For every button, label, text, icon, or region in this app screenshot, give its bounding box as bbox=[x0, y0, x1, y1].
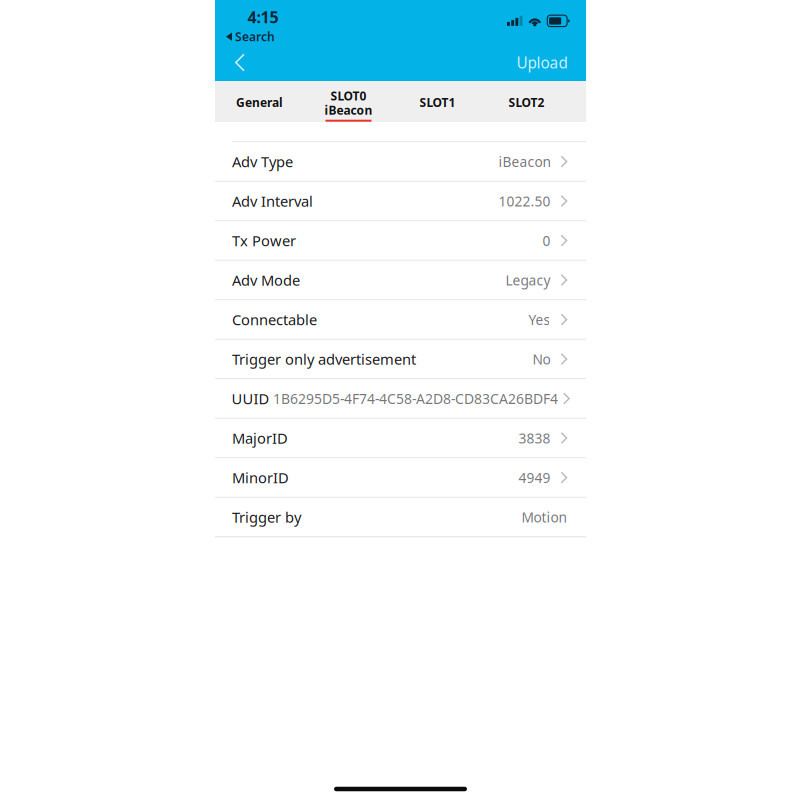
staticText: MinorID bbox=[232, 468, 289, 488]
button[interactable]: Back bbox=[215, 44, 259, 81]
button[interactable]: Adv Mode bbox=[215, 261, 586, 300]
staticText: Motion bbox=[521, 508, 566, 526]
button[interactable]: UUID bbox=[215, 379, 586, 419]
staticText: 1B6295D5-4F74-4C58-A2D8-CD83CA26BDF4 bbox=[273, 389, 558, 408]
staticText: 4949 bbox=[518, 468, 550, 487]
staticText: 3838 bbox=[518, 429, 550, 447]
staticText: Upload bbox=[516, 52, 567, 73]
button[interactable]: SLOT0 bbox=[304, 81, 393, 122]
staticText: Adv Interval bbox=[232, 191, 313, 211]
staticText: 4:15 bbox=[247, 6, 278, 28]
staticText: Adv Mode bbox=[232, 270, 300, 290]
staticText: Trigger only advertisement bbox=[232, 349, 416, 369]
staticText: Search bbox=[235, 28, 275, 45]
staticText: Connectable bbox=[232, 310, 317, 330]
button[interactable]: Trigger by bbox=[215, 498, 586, 537]
button[interactable]: General bbox=[215, 81, 304, 122]
staticText: iBeacon bbox=[324, 102, 372, 118]
button[interactable]: SLOT1 bbox=[393, 81, 482, 122]
button[interactable]: Upload bbox=[502, 44, 586, 81]
button[interactable]: MinorID bbox=[215, 458, 586, 498]
staticText: General bbox=[236, 94, 283, 110]
staticText: Tx Power bbox=[232, 231, 296, 251]
staticText: MajorID bbox=[232, 428, 288, 448]
button[interactable]: Trigger only advertisement bbox=[215, 340, 586, 379]
staticText: 0 bbox=[542, 231, 550, 250]
staticText: SLOT2 bbox=[508, 94, 544, 110]
staticText: SLOT1 bbox=[419, 94, 455, 110]
staticText: Adv Type bbox=[232, 152, 293, 172]
staticText: iBeacon bbox=[498, 152, 550, 171]
button[interactable]: Tx Power bbox=[215, 221, 586, 261]
button[interactable]: SLOT2 bbox=[482, 81, 571, 122]
staticText: SLOT0 bbox=[330, 88, 366, 104]
staticText: UUID bbox=[231, 389, 269, 409]
button[interactable]: Adv Interval bbox=[215, 182, 586, 221]
staticText: Legacy bbox=[505, 271, 550, 289]
staticText: Trigger by bbox=[232, 507, 301, 527]
button[interactable]: MajorID bbox=[215, 419, 586, 458]
staticText: 1022.50 bbox=[498, 192, 550, 210]
staticText: No bbox=[532, 350, 550, 368]
staticText: Yes bbox=[528, 310, 550, 329]
button[interactable]: Connectable bbox=[215, 300, 586, 340]
button[interactable]: Adv Type bbox=[215, 142, 586, 182]
